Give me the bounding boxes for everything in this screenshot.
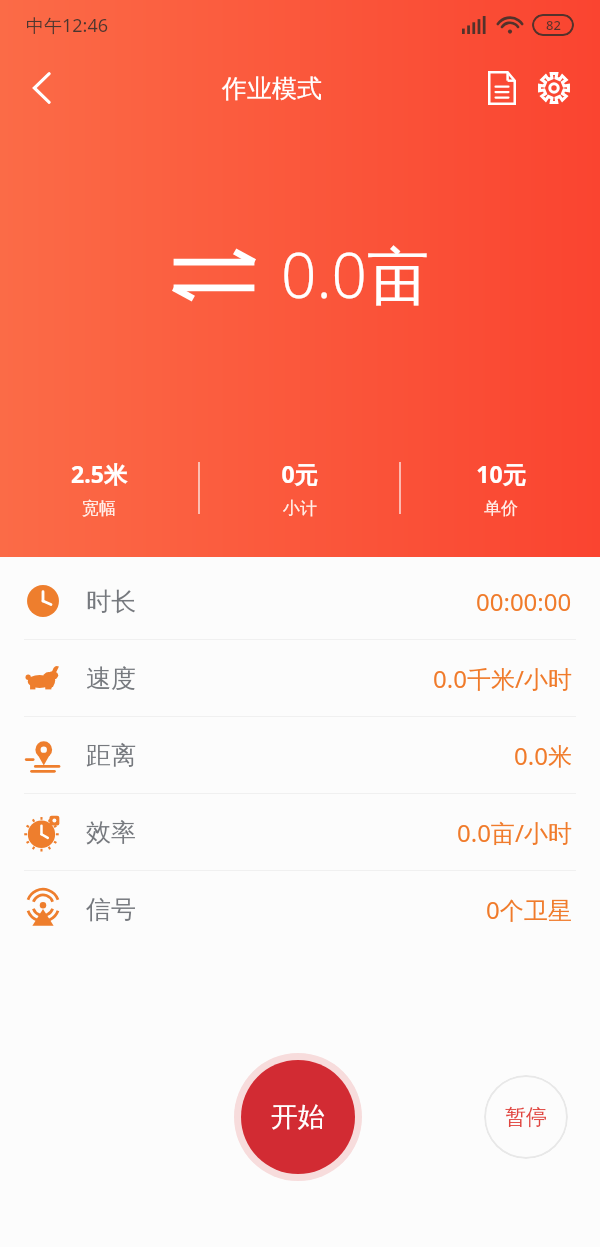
button[interactable]: 10元 xyxy=(401,458,600,519)
button[interactable]: 2.5米 xyxy=(0,458,198,519)
button[interactable]: Back xyxy=(16,62,68,114)
staticText: 0个卫星 xyxy=(486,893,572,926)
staticText: 小计 xyxy=(283,498,317,519)
staticText: 宽幅 xyxy=(82,498,116,519)
staticText: 开始 xyxy=(271,1100,325,1134)
button[interactable]: 信号 xyxy=(0,871,600,947)
staticText: 2.5米 xyxy=(71,458,127,489)
button[interactable]: 暂停 xyxy=(484,1075,568,1159)
staticText: 0元 xyxy=(281,458,318,489)
staticText: 00:00:00 xyxy=(476,585,572,618)
staticText: 0.0千米/小时 xyxy=(433,662,572,695)
button[interactable]: 时长 xyxy=(0,563,600,640)
button[interactable]: Settings xyxy=(528,62,580,114)
staticText: 效率 xyxy=(86,817,136,848)
staticText: 暂停 xyxy=(505,1104,547,1130)
button[interactable]: Records xyxy=(476,62,528,114)
button[interactable]: 速度 xyxy=(0,640,600,717)
staticText: 10元 xyxy=(476,458,526,489)
button[interactable]: 距离 xyxy=(0,717,600,794)
staticText: 距离 xyxy=(86,740,136,771)
button[interactable]: 开始 xyxy=(241,1060,355,1174)
staticText: 0.0米 xyxy=(514,739,572,772)
button[interactable]: 0元 xyxy=(200,458,399,519)
staticText: 信号 xyxy=(86,894,136,925)
staticText: 时长 xyxy=(86,586,136,617)
staticText: 82 xyxy=(546,16,561,34)
button[interactable]: 效率 xyxy=(0,794,600,871)
staticText: 中午12:46 xyxy=(26,13,109,38)
staticText: 作业模式 xyxy=(222,73,322,104)
staticText: 速度 xyxy=(86,663,136,694)
staticText: 单价 xyxy=(484,498,518,519)
staticText: 0.0亩 xyxy=(281,232,429,317)
staticText: 0.0亩/小时 xyxy=(457,816,572,849)
